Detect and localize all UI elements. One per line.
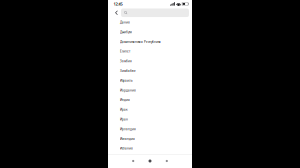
- staticText: Иран: [120, 117, 128, 121]
- button[interactable]: Ирландия: [108, 124, 192, 134]
- button[interactable]: Иран: [108, 114, 192, 124]
- staticText: Индия: [120, 98, 130, 102]
- button[interactable]: Countries: [142, 154, 158, 167]
- staticText: Исландия: [120, 137, 135, 141]
- staticText: Замбия: [120, 59, 132, 63]
- button[interactable]: Дания: [108, 17, 192, 27]
- button[interactable]: Доминиканская Республика: [108, 37, 192, 47]
- button[interactable]: Favorites: [125, 154, 141, 167]
- button[interactable]: Египет: [108, 47, 192, 56]
- staticText: Иордания: [120, 88, 136, 92]
- staticText: Доминиканская Республика: [120, 40, 161, 44]
- button[interactable]: Исландия: [108, 134, 192, 144]
- staticText: Ирак: [120, 108, 128, 112]
- staticText: Дания: [120, 20, 130, 24]
- staticText: Ирландия: [120, 127, 136, 131]
- staticText: Джибути: [120, 30, 132, 34]
- staticText: Испания: [120, 146, 133, 150]
- button[interactable]: Settings: [159, 154, 175, 167]
- button[interactable]: Иордания: [108, 85, 192, 95]
- button[interactable]: Back: [112, 8, 121, 17]
- button[interactable]: Ирак: [108, 105, 192, 114]
- button[interactable]: [121, 8, 189, 17]
- button[interactable]: Зимбабве: [108, 66, 192, 76]
- button[interactable]: Израиль: [108, 76, 192, 85]
- button[interactable]: Индия: [108, 95, 192, 105]
- button[interactable]: Испания: [108, 144, 192, 153]
- staticText: 12:45: [113, 1, 122, 7]
- staticText: Израиль: [120, 79, 133, 83]
- button[interactable]: Джибути: [108, 27, 192, 37]
- button[interactable]: Замбия: [108, 56, 192, 66]
- staticText: Зимбабве: [120, 69, 136, 73]
- staticText: Египет: [120, 49, 130, 53]
